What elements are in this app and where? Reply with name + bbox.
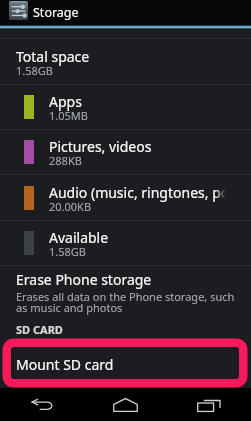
staticText: 1.05MB xyxy=(49,108,88,123)
button[interactable]: Mount SD card xyxy=(0,337,251,375)
staticText: Available xyxy=(49,228,109,247)
staticText: 288KB xyxy=(49,153,82,168)
staticText: 20.00KB xyxy=(49,199,92,214)
staticText: Audio (music, ringtones, podcasts) xyxy=(49,183,226,202)
staticText: SD CARD xyxy=(16,322,63,337)
staticText: 1.58GB xyxy=(16,63,53,78)
staticText: 1.58GB xyxy=(49,244,86,259)
button[interactable]: Erase Phone storage xyxy=(0,266,251,313)
button[interactable]: Total space xyxy=(0,39,251,84)
staticText: Pictures, videos xyxy=(49,137,152,156)
button[interactable]: Audio (music, ringtones, podcasts) xyxy=(0,175,251,220)
button[interactable]: Apps xyxy=(0,85,251,129)
button[interactable]: Pictures, videos xyxy=(0,130,251,174)
staticText: Erases all data on the Phone storage, su… xyxy=(16,289,241,315)
staticText: Apps xyxy=(49,92,82,111)
staticText: Total space xyxy=(16,47,90,66)
button[interactable]: Back xyxy=(0,388,83,421)
staticText: Mount SD card xyxy=(16,355,114,374)
staticText: Erase Phone storage xyxy=(16,270,152,289)
button[interactable]: Available xyxy=(0,221,251,265)
button[interactable]: Home xyxy=(83,388,167,421)
button[interactable]: Recent apps xyxy=(167,388,251,421)
staticText: Storage xyxy=(33,4,79,21)
